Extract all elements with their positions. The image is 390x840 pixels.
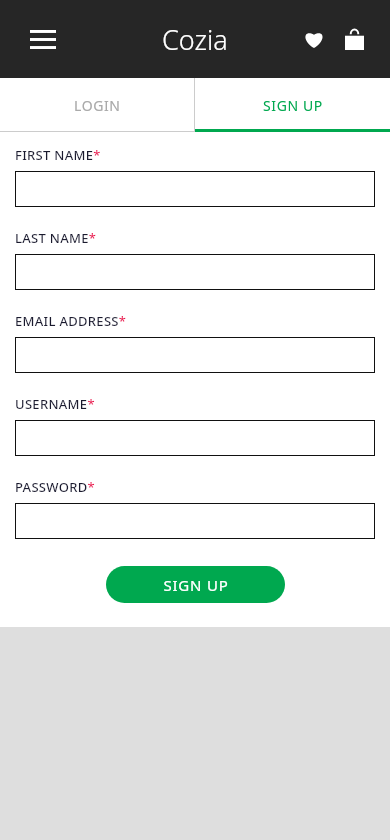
staticText: EMAIL ADDRESS*	[15, 312, 127, 330]
button[interactable]: Wishlist	[294, 19, 334, 59]
staticText: SIGN UP	[263, 96, 323, 115]
staticText: USERNAME*	[15, 395, 95, 413]
staticText: PASSWORD*	[15, 478, 95, 496]
button[interactable]	[15, 420, 375, 456]
staticText: SIGN UP	[163, 575, 229, 595]
button[interactable]: LOGIN	[0, 78, 195, 132]
button[interactable]: Shopping bag	[334, 19, 374, 59]
staticText: FIRST NAME*	[15, 146, 101, 164]
button[interactable]: Open navigation menu	[20, 16, 66, 62]
button[interactable]	[15, 171, 375, 207]
staticText: LOGIN	[74, 96, 121, 115]
button[interactable]	[15, 337, 375, 373]
button[interactable]	[15, 503, 375, 539]
button[interactable]: SIGN UP	[106, 566, 285, 603]
staticText: LAST NAME*	[15, 229, 97, 247]
staticText: Cozia	[162, 21, 228, 58]
button[interactable]: SIGN UP	[195, 78, 390, 132]
button[interactable]	[15, 254, 375, 290]
